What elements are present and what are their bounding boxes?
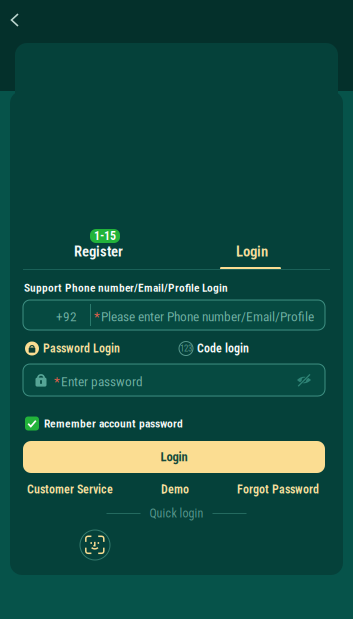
staticText: Support Phone number/Email/Profile Login <box>24 281 228 294</box>
staticText: +92 <box>56 309 77 325</box>
button[interactable]: Login <box>23 441 325 473</box>
button[interactable]: Forgot Password <box>237 482 319 497</box>
staticText: * <box>94 309 100 325</box>
button[interactable]: Show password <box>293 369 315 391</box>
staticText: Register <box>74 243 123 260</box>
staticText: Quick login <box>149 506 203 521</box>
staticText: 1-15 <box>94 229 116 243</box>
staticText: Please enter Phone number/Email/Profile <box>101 309 314 325</box>
staticText: Forgot Password <box>237 482 319 497</box>
button[interactable]: Remember account password <box>25 416 183 431</box>
staticText: Remember account password <box>44 417 183 430</box>
button[interactable]: Back <box>2 7 28 33</box>
staticText: Password Login <box>43 341 120 356</box>
staticText: Code login <box>197 341 249 356</box>
staticText: Enter password <box>61 374 143 390</box>
staticText: * <box>54 374 60 390</box>
staticText: Customer Service <box>27 482 113 497</box>
button[interactable]: Password Login <box>25 341 120 356</box>
button[interactable]: 123 <box>179 341 249 356</box>
staticText: Login <box>160 450 187 464</box>
staticText: 123 <box>180 343 192 354</box>
staticText: Demo <box>161 482 189 497</box>
button[interactable]: Face ID login <box>80 530 110 560</box>
staticText: Login <box>236 243 268 260</box>
button[interactable]: Login <box>177 229 330 270</box>
button[interactable]: Customer Service <box>27 482 113 497</box>
button[interactable]: Demo <box>161 482 189 497</box>
button[interactable]: Register <box>23 229 177 270</box>
